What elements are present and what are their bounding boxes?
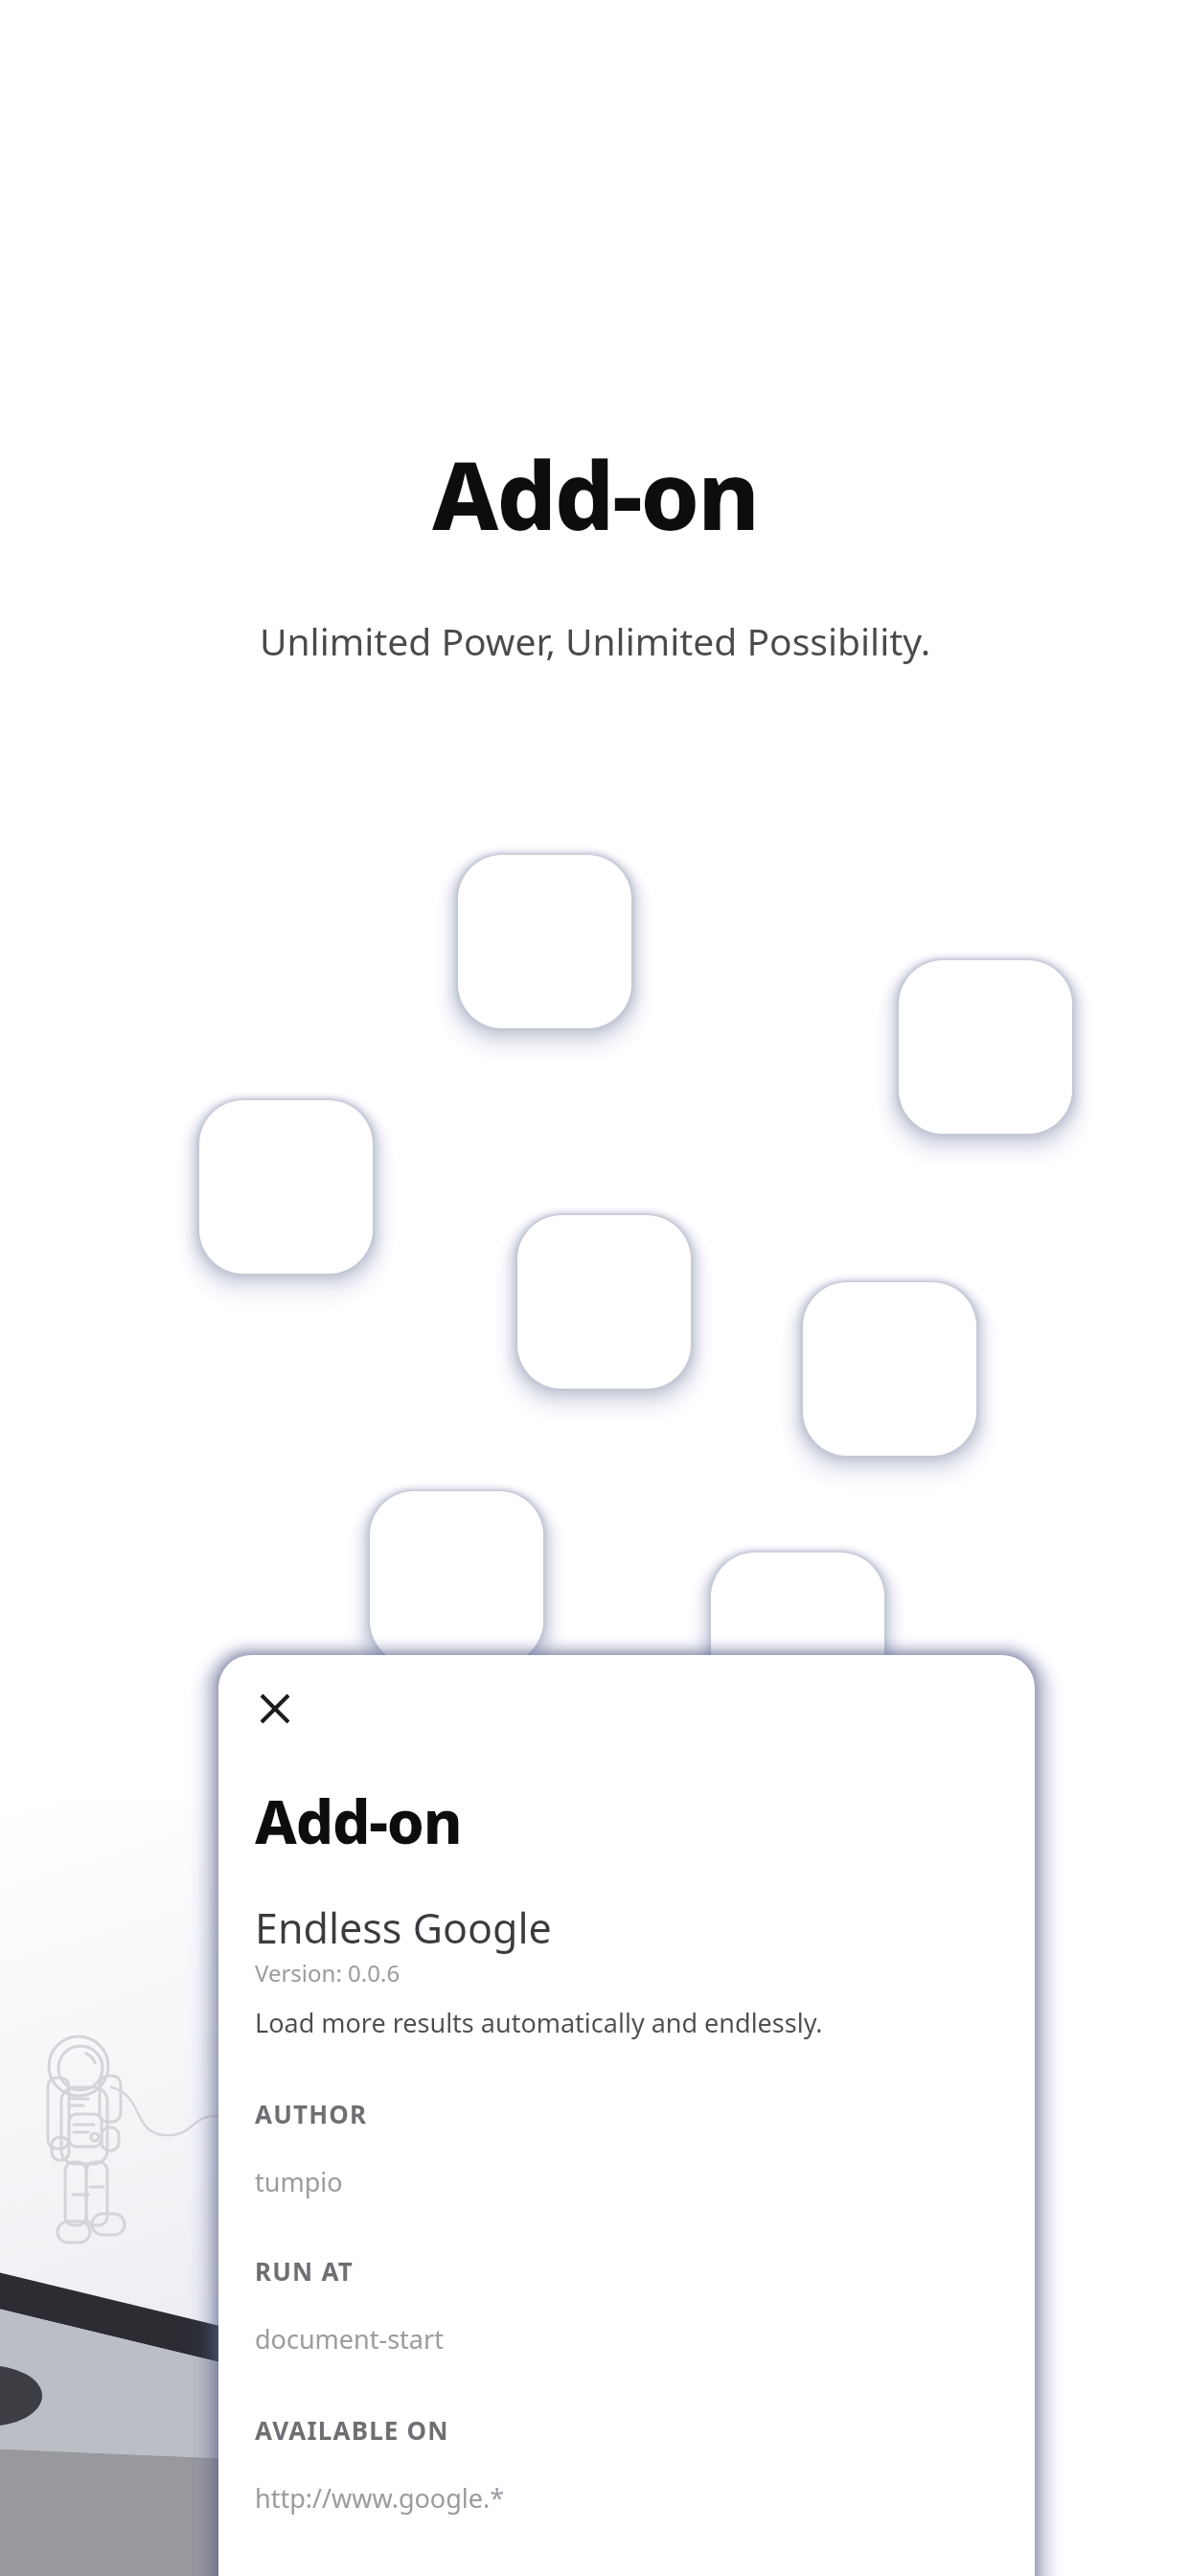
staticText: Add-on (432, 429, 758, 554)
button[interactable]: Close (240, 1673, 310, 1744)
staticText: RUN AT (255, 2254, 354, 2288)
staticText: Load more results automatically and endl… (255, 2005, 823, 2040)
staticText: Unlimited Power, Unlimited Possibility. (260, 615, 931, 666)
staticText: tumpio (255, 2164, 343, 2199)
staticText: Endless Google (255, 1899, 552, 1956)
staticText: AVAILABLE ON (255, 2413, 449, 2447)
staticText: Version: 0.0.6 (255, 1957, 400, 1989)
staticText: Add-on (255, 1781, 462, 1861)
staticText: http://www.google.* (255, 2480, 505, 2516)
staticText: document-start (255, 2321, 444, 2357)
staticText: AUTHOR (255, 2097, 368, 2130)
